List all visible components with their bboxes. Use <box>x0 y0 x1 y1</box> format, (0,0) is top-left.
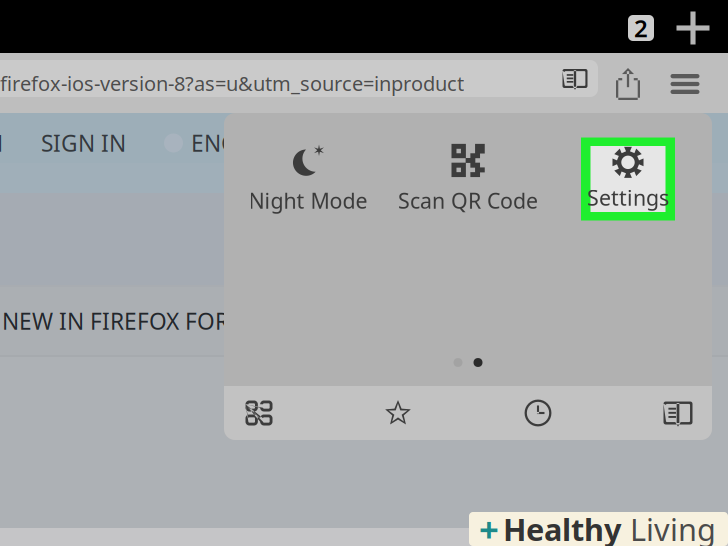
staticText: + <box>479 506 499 546</box>
staticText: NEW IN FIREFOX FOR IOS VER <box>2 306 320 336</box>
staticText: Scan QR Code <box>398 186 538 215</box>
button[interactable]: Settings <box>548 137 708 221</box>
button[interactable]: Reader Mode <box>554 60 596 97</box>
staticText: 2 <box>634 12 648 44</box>
button[interactable]: New Tab <box>670 5 716 51</box>
button[interactable]: History <box>511 386 565 440</box>
button[interactable]: Reading List <box>651 386 705 440</box>
button[interactable]: Tabs <box>232 386 286 440</box>
button[interactable]: Tabs <box>618 5 664 51</box>
staticText: ENGLI <box>191 128 258 158</box>
button[interactable]: Night Mode <box>228 137 388 221</box>
staticText: Settings <box>587 183 669 212</box>
staticText: Night Mode <box>248 186 367 215</box>
button[interactable]: Scan QR Code <box>388 137 548 221</box>
staticText: SIGN IN <box>41 128 126 158</box>
staticText: N <box>0 128 3 158</box>
staticText: Healthy <box>503 509 622 546</box>
button[interactable]: Bookmarks <box>371 386 425 440</box>
staticText: w-firefox-ios-version-8?as=u&utm_source=… <box>0 70 464 97</box>
button[interactable]: Menu <box>659 58 711 110</box>
staticText: Living <box>622 509 716 546</box>
button[interactable]: Share <box>604 58 652 110</box>
button[interactable]: Address bar <box>0 60 598 97</box>
